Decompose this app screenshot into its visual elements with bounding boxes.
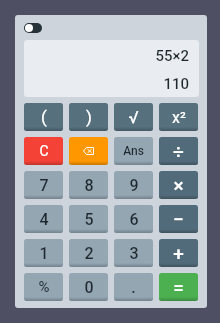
button[interactable]: %: [24, 273, 63, 301]
button[interactable]: ÷: [159, 137, 198, 165]
button[interactable]: .: [114, 273, 153, 301]
button[interactable]: Backspace: [69, 137, 108, 165]
staticText: .: [131, 278, 136, 297]
button[interactable]: 2: [69, 239, 108, 267]
button[interactable]: 4: [24, 205, 63, 233]
staticText: ÷: [173, 140, 184, 162]
button[interactable]: ×: [159, 171, 198, 199]
button[interactable]: 9: [114, 171, 153, 199]
staticText: +: [173, 242, 184, 264]
staticText: 8: [84, 176, 94, 195]
staticText: C: [39, 143, 49, 159]
button[interactable]: ): [69, 103, 108, 131]
button[interactable]: 6: [114, 205, 153, 233]
button[interactable]: −: [159, 205, 198, 233]
button[interactable]: =: [159, 273, 198, 301]
button[interactable]: 5: [69, 205, 108, 233]
staticText: √: [128, 107, 139, 127]
staticText: 5: [84, 210, 94, 229]
button[interactable]: (: [24, 103, 63, 131]
staticText: 7: [39, 176, 49, 195]
button[interactable]: 3: [114, 239, 153, 267]
button[interactable]: Toggle scientific mode: [24, 23, 42, 33]
staticText: x²: [172, 108, 186, 127]
staticText: 6: [129, 210, 139, 229]
staticText: 4: [39, 210, 49, 229]
staticText: =: [173, 276, 184, 298]
staticText: 9: [129, 176, 139, 195]
staticText: −: [173, 208, 184, 230]
staticText: Ans: [123, 144, 144, 158]
staticText: ): [86, 107, 92, 127]
staticText: 2: [84, 244, 94, 263]
button[interactable]: 7: [24, 171, 63, 199]
button[interactable]: √: [114, 103, 153, 131]
staticText: 0: [84, 278, 94, 297]
staticText: 110: [24, 75, 189, 93]
staticText: 3: [129, 244, 139, 263]
staticText: ×: [173, 174, 184, 196]
button[interactable]: 8: [69, 171, 108, 199]
button[interactable]: Ans: [114, 137, 153, 165]
staticText: %: [38, 278, 50, 296]
button[interactable]: +: [159, 239, 198, 267]
button[interactable]: C: [24, 137, 63, 165]
button[interactable]: x²: [159, 103, 198, 131]
button[interactable]: 1: [24, 239, 63, 267]
staticText: (: [41, 107, 47, 127]
staticText: 1: [39, 244, 49, 263]
button[interactable]: 0: [69, 273, 108, 301]
staticText: 55×2: [24, 47, 189, 65]
